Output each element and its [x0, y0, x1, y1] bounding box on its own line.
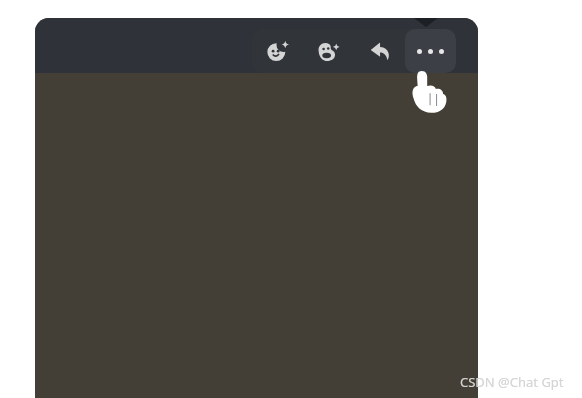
staticText: CSDN @Chat Gpt: [460, 373, 564, 391]
button[interactable]: Magic sticker: [303, 29, 354, 73]
button[interactable]: AI enhance: [252, 29, 303, 73]
button[interactable]: Reply: [354, 29, 405, 73]
button[interactable]: More options: [405, 29, 456, 73]
